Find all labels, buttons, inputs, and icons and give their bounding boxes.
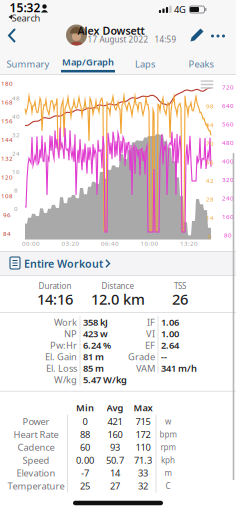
staticText: 4G [174,3,186,16]
staticText: 2.64 [161,339,179,351]
staticText: Speed [22,454,49,466]
button[interactable]: Summary [0,54,56,74]
staticText: bpm [159,429,176,440]
button[interactable]: Edit [187,25,206,44]
staticText: 640 [222,101,234,110]
staticText: 26 [172,289,188,309]
staticText: 160 [222,212,234,221]
staticText: Elevation [16,467,55,479]
staticText: EF [145,339,155,351]
staticText: 480 [222,138,234,147]
staticText: 85 m [83,362,104,374]
staticText: Min [76,401,94,414]
staticText: 50.7 [106,454,124,466]
staticText: Alex Dowsett [77,23,144,38]
staticText: Temperature [7,480,64,492]
staticText: 358 kJ [83,316,108,328]
staticText: 16 [12,167,20,176]
staticText: 93 [110,441,120,453]
button[interactable]: Back [0,22,24,49]
staticText: VAM [136,362,155,374]
staticText: -7 [81,467,89,479]
staticText: 1.06 [161,316,179,328]
staticText: 180 [1,79,13,87]
staticText: w [165,416,171,427]
staticText: 13:20 [180,239,198,247]
button[interactable]: Map/Graph [61,54,117,74]
staticText: 0 [208,232,212,241]
staticText: 81 m [83,350,104,363]
staticText: 10:00 [140,239,158,247]
staticText: kph [161,455,175,465]
button[interactable]: More [208,28,228,44]
staticText: 0 [226,249,230,258]
staticText: 720 [222,83,234,91]
staticText: 6.24 % [83,339,111,351]
staticText: Laps [135,58,155,70]
staticText: Avg [106,401,123,414]
staticText: 172 [135,428,150,440]
staticText: 156 [1,117,13,125]
staticText: 400 [222,157,234,165]
staticText: 0 [82,415,87,428]
staticText: Summary [6,58,49,70]
staticText: m [164,468,171,478]
staticText: 108 [1,192,13,200]
staticText: 560 [222,120,234,128]
button[interactable]: Laps [117,54,173,74]
staticText: 14:16 [37,289,73,309]
button[interactable]: Peaks [173,54,229,74]
staticText: 160 [107,428,122,440]
staticText: VI [146,327,155,340]
button[interactable]: Chart options [198,78,215,91]
staticText: Peaks [188,58,213,70]
staticText: 00:00 [22,239,40,247]
staticText: 120 [1,173,13,181]
staticText: 96 [3,211,11,219]
staticText: 25 [80,480,90,492]
staticText: Map/Graph [62,56,114,68]
staticText: 15:32 [9,0,40,15]
staticText: 28 [206,195,214,203]
staticText: W/kg [54,373,77,386]
staticText: 40 [12,112,20,121]
staticText: rpm [160,442,175,452]
staticText: 132 [1,154,13,163]
staticText: TSS [174,281,186,291]
staticText: 84 [206,121,214,129]
staticText: Max [133,401,152,414]
staticText: IF [147,316,155,328]
staticText: 80 [224,231,232,239]
staticText: 88 [80,428,90,440]
staticText: 71.3 [134,454,152,466]
staticText: 42 [206,176,214,185]
staticText: 715 [135,415,150,428]
staticText: 5.47 W/kg [83,373,127,386]
button[interactable]: Entire Workout [0,251,236,276]
staticText: 48 [12,94,20,102]
staticText: Grade [128,350,155,363]
staticText: Duration [38,281,71,291]
staticText: 341 m/h [161,362,197,374]
staticText: 240 [222,194,234,202]
staticText: 03:20 [61,239,79,247]
staticText: 84 [3,229,11,238]
staticText: 98 [206,102,214,110]
staticText: 32 [138,480,148,492]
staticText: 24 [12,149,20,157]
staticText: -- [161,350,167,363]
staticText: 8 [14,186,18,194]
staticText: 168 [1,98,13,106]
staticText: 421 [107,415,122,428]
staticText: 32 [12,131,20,139]
staticText: 27 [110,480,120,492]
staticText: 1.00 [161,327,179,340]
staticText: 33 [138,467,148,479]
staticText: NP [64,327,77,340]
staticText: 14 [206,214,214,222]
staticText: 0 [14,204,18,213]
staticText: Search [11,12,40,24]
staticText: C [165,481,170,491]
staticText: 14 [110,467,120,479]
staticText: Pw:Hr [50,339,77,351]
